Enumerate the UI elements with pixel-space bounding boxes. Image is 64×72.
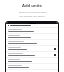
button[interactable]: Select option [6, 52, 58, 57]
button[interactable]: Select option [6, 46, 58, 51]
staticText: Add units [22, 3, 42, 9]
button[interactable] [6, 28, 58, 33]
button[interactable] [6, 34, 58, 39]
staticText: Set up your business listing [18, 11, 47, 14]
button[interactable] [6, 40, 58, 45]
other: Select option [54, 54, 56, 56]
staticText: and manage your details [19, 15, 45, 18]
other: Select option [54, 48, 56, 50]
button[interactable] [6, 58, 58, 63]
button[interactable] [6, 64, 58, 69]
